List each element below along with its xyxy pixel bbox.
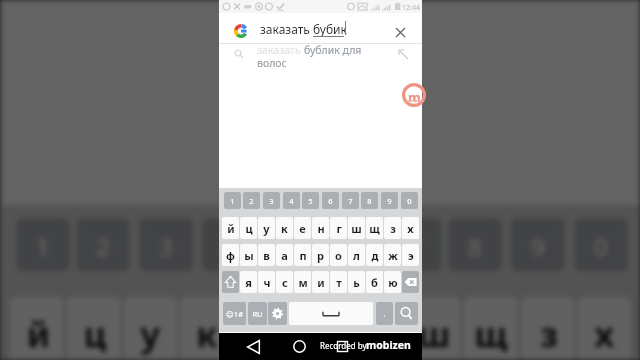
button[interactable]: ц xyxy=(67,297,120,360)
staticText: 2 xyxy=(95,230,111,262)
button[interactable]: 1 xyxy=(224,192,241,209)
button[interactable]: у xyxy=(258,217,275,239)
staticText: бублик для xyxy=(304,43,362,57)
button[interactable]: ц xyxy=(240,217,257,239)
staticText: э xyxy=(408,248,414,263)
button[interactable]: и xyxy=(312,271,329,293)
button[interactable]: 1 xyxy=(16,218,70,271)
button[interactable]: 6 xyxy=(325,218,379,271)
staticText: б xyxy=(371,275,378,290)
staticText: заказать xyxy=(260,21,313,37)
button[interactable]: р xyxy=(312,244,329,266)
staticText: ч xyxy=(263,275,271,290)
staticText: 3 xyxy=(158,230,174,262)
button[interactable]: т xyxy=(330,271,347,293)
button[interactable]: к xyxy=(180,297,234,360)
button[interactable]: я xyxy=(240,271,257,293)
staticText: щ xyxy=(473,309,508,357)
button[interactable]: Back xyxy=(245,336,263,354)
button[interactable]: 2 xyxy=(76,218,130,271)
button[interactable]: 9 xyxy=(381,192,398,209)
button[interactable]: с xyxy=(276,271,293,293)
staticText: 6 xyxy=(328,196,333,206)
button[interactable]: ю xyxy=(384,271,401,293)
button[interactable]: Space xyxy=(289,302,373,325)
button[interactable]: 5 xyxy=(302,192,319,209)
staticText: р xyxy=(317,248,324,263)
button[interactable]: й xyxy=(222,217,239,239)
button[interactable]: б xyxy=(366,271,383,293)
staticText: г xyxy=(336,221,342,236)
button[interactable]: 0 xyxy=(574,218,628,271)
button[interactable]: у xyxy=(123,297,177,360)
button[interactable]: в xyxy=(258,244,275,266)
staticText: ф xyxy=(226,248,235,263)
button[interactable]: з xyxy=(521,297,574,360)
button[interactable]: 6 xyxy=(322,192,339,209)
button[interactable]: а xyxy=(276,244,293,266)
staticText: н xyxy=(309,309,335,357)
button[interactable]: Settings xyxy=(268,302,287,325)
button[interactable]: к xyxy=(276,217,293,239)
button[interactable]: щ xyxy=(366,217,383,239)
staticText: волос xyxy=(257,56,287,70)
button[interactable]: . xyxy=(376,302,393,325)
button[interactable]: е xyxy=(237,297,291,360)
button[interactable]: 8 xyxy=(448,218,502,271)
button[interactable]: 0 xyxy=(401,192,418,209)
button[interactable]: д xyxy=(366,244,383,266)
button[interactable]: 5 xyxy=(262,218,316,271)
button[interactable]: ☺1# xyxy=(223,302,246,325)
button[interactable]: н xyxy=(294,297,347,360)
staticText: 5 xyxy=(281,230,297,262)
staticText: о xyxy=(335,248,342,263)
button[interactable]: ш xyxy=(348,217,365,239)
button[interactable]: 7 xyxy=(388,218,442,271)
button[interactable]: о xyxy=(330,244,347,266)
button[interactable]: э xyxy=(402,244,419,266)
staticText: т xyxy=(336,275,342,290)
button[interactable]: Home xyxy=(290,336,308,354)
button[interactable]: Shift xyxy=(222,271,239,293)
button[interactable]: х xyxy=(577,297,631,360)
button[interactable]: ь xyxy=(348,271,365,293)
button[interactable]: 4 xyxy=(283,192,300,209)
button[interactable]: Backspace xyxy=(402,271,419,293)
staticText: ☺1# xyxy=(226,309,243,319)
button[interactable]: л xyxy=(348,244,365,266)
button[interactable]: з xyxy=(384,217,401,239)
other: Recent apps xyxy=(337,341,348,352)
button[interactable]: ж xyxy=(384,244,401,266)
button[interactable]: ч xyxy=(258,271,275,293)
staticText: 0 xyxy=(407,196,412,206)
button[interactable]: 3 xyxy=(139,218,193,271)
button[interactable]: 2 xyxy=(243,192,260,209)
button[interactable]: е xyxy=(294,217,311,239)
button[interactable]: х xyxy=(402,217,419,239)
staticText: к xyxy=(196,309,218,357)
button[interactable]: г xyxy=(330,217,347,239)
button[interactable]: Clear xyxy=(389,19,409,39)
button[interactable]: щ xyxy=(464,297,517,360)
button[interactable]: 3 xyxy=(263,192,280,209)
staticText: ж xyxy=(388,248,398,263)
staticText: в xyxy=(263,248,270,263)
button[interactable]: м xyxy=(294,271,311,293)
button[interactable]: ш xyxy=(407,297,461,360)
button[interactable]: й xyxy=(10,297,64,360)
button[interactable]: 7 xyxy=(342,192,359,209)
button[interactable]: Search xyxy=(395,302,418,325)
button[interactable]: 8 xyxy=(361,192,378,209)
button[interactable]: н xyxy=(312,217,329,239)
button[interactable]: 9 xyxy=(511,218,565,271)
staticText: с xyxy=(282,275,288,290)
button[interactable]: г xyxy=(350,297,404,360)
button[interactable]: п xyxy=(294,244,311,266)
staticText: 12:44 xyxy=(402,3,420,13)
button[interactable]: RU xyxy=(248,302,267,325)
button[interactable]: ф xyxy=(222,244,239,266)
staticText: бубик xyxy=(313,21,347,37)
button[interactable]: ы xyxy=(240,244,257,266)
button[interactable]: 4 xyxy=(202,218,256,271)
staticText: 7 xyxy=(348,196,353,206)
